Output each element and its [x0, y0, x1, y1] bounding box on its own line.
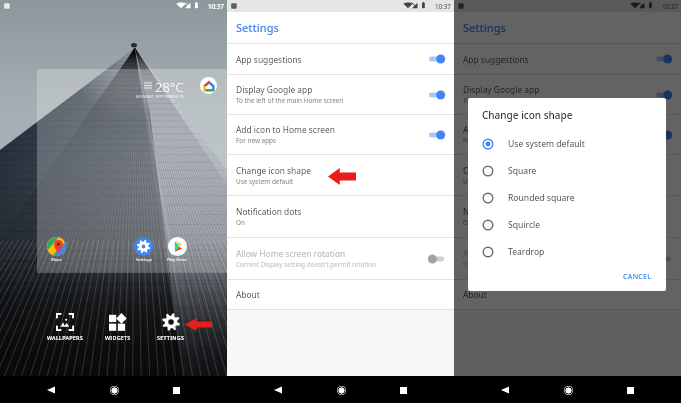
staticText: About	[236, 289, 260, 300]
button[interactable]: Recents	[618, 378, 642, 402]
staticText: On	[236, 218, 245, 227]
staticText: For new apps	[463, 136, 504, 145]
button[interactable]: Rounded square	[468, 184, 666, 211]
staticText: On	[463, 218, 472, 227]
button[interactable]: Maps	[47, 237, 66, 263]
button[interactable]: About	[454, 280, 681, 309]
staticText: 10:37	[435, 2, 451, 10]
button[interactable]: App suggestions	[227, 44, 454, 74]
staticText: Rounded square	[508, 192, 575, 204]
staticText: To the left of the main Home screen	[236, 96, 344, 105]
staticText: Allow Home screen rotation	[463, 248, 573, 259]
button[interactable]: SETTINGS	[155, 311, 187, 343]
button[interactable]: Toggle on	[427, 89, 446, 101]
button[interactable]: Allow Home screen rotation	[227, 238, 454, 279]
button[interactable]: Home	[329, 378, 353, 402]
button[interactable]: Toggle on	[654, 129, 673, 141]
staticText: For new apps	[236, 136, 277, 145]
button[interactable]: Recents	[164, 378, 188, 402]
button[interactable]: Toggle off	[427, 253, 446, 265]
button[interactable]: Change icon shape	[454, 155, 681, 195]
staticText: 28°C	[155, 78, 184, 96]
button[interactable]: Squircle	[468, 211, 666, 238]
staticText: WIDGETS	[105, 334, 131, 341]
staticText: Settings	[236, 20, 279, 35]
button[interactable]: Back	[493, 378, 517, 402]
staticText: Display Google app	[236, 84, 313, 95]
staticText: Squircle	[508, 219, 541, 231]
staticText: 10:37	[208, 2, 224, 10]
staticText: Current Display setting doesn't permit r…	[236, 260, 377, 269]
staticText: Add icon to Home screen	[463, 124, 562, 135]
button[interactable]: Add icon to Home screen	[454, 115, 681, 154]
staticText: Current Display setting doesn't permit r…	[463, 260, 604, 269]
staticText: Use system default	[463, 177, 521, 186]
staticText: Teardrop	[508, 246, 545, 258]
staticText: MONDAY, SEPTEMBER 25	[136, 94, 185, 99]
button[interactable]: Home	[556, 378, 580, 402]
button[interactable]: Settings	[134, 237, 153, 263]
button[interactable]: Change icon shape	[227, 155, 454, 195]
button[interactable]: WALLPAPERS	[45, 311, 85, 343]
button[interactable]: Display Google app	[227, 75, 454, 114]
staticText: CANCEL	[623, 272, 652, 282]
button[interactable]: Notification dots	[227, 196, 454, 237]
button[interactable]: Toggle off	[654, 253, 673, 265]
staticText: Play Store	[167, 257, 187, 263]
staticText: Notification dots	[236, 206, 302, 217]
staticText: To the left of the main Home screen	[463, 96, 571, 105]
button[interactable]: Add icon to Home screen	[227, 115, 454, 154]
staticText: Allow Home screen rotation	[236, 248, 346, 259]
staticText: Add icon to Home screen	[236, 124, 335, 135]
button[interactable]: App suggestions	[454, 44, 681, 74]
staticText: Settings	[463, 20, 506, 35]
button[interactable]: Google Home	[200, 77, 217, 94]
button[interactable]: Toggle on	[427, 129, 446, 141]
staticText: App suggestions	[236, 54, 302, 65]
staticText: Change icon shape	[463, 165, 538, 176]
button[interactable]: Toggle on	[654, 89, 673, 101]
button[interactable]: Teardrop	[468, 238, 666, 265]
button[interactable]: CANCEL	[619, 269, 656, 285]
button[interactable]: WIDGETS	[103, 311, 133, 343]
staticText: Change icon shape	[482, 108, 573, 122]
staticText: App suggestions	[463, 54, 529, 65]
button[interactable]: Home	[102, 378, 126, 402]
staticText: SETTINGS	[157, 334, 185, 341]
staticText: Change icon shape	[236, 165, 311, 176]
staticText: 10:37	[662, 2, 678, 10]
button[interactable]: Back	[266, 378, 290, 402]
staticText: Maps	[51, 257, 62, 263]
button[interactable]: About	[227, 280, 454, 309]
button[interactable]: Toggle on	[427, 53, 446, 65]
staticText: About	[463, 289, 487, 300]
button[interactable]: Use system default	[468, 130, 666, 157]
button[interactable]: Notification dots	[454, 196, 681, 237]
staticText: Notification dots	[463, 206, 529, 217]
button[interactable]: Square	[468, 157, 666, 184]
button[interactable]: Back	[39, 378, 63, 402]
button[interactable]: Display Google app	[454, 75, 681, 114]
button[interactable]: Play Store	[167, 237, 187, 263]
staticText: WALLPAPERS	[47, 334, 83, 341]
staticText: Display Google app	[463, 84, 540, 95]
staticText: Square	[508, 165, 537, 177]
staticText: Use system default	[508, 138, 585, 150]
button[interactable]: Allow Home screen rotation	[454, 238, 681, 279]
staticText: Settings	[136, 257, 152, 263]
button[interactable]: Recents	[391, 378, 415, 402]
button[interactable]: Toggle on	[654, 53, 673, 65]
staticText: Use system default	[236, 177, 294, 186]
